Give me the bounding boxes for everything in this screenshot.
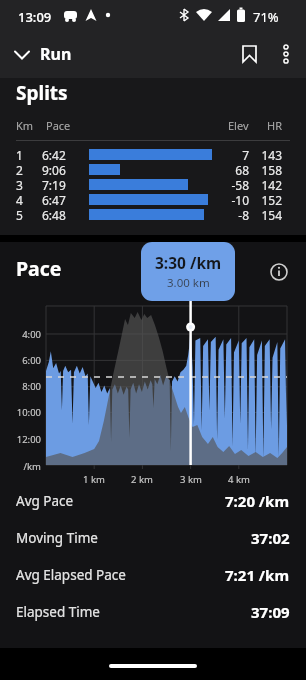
staticText: 158 xyxy=(261,162,282,177)
staticText: Pace xyxy=(16,255,62,282)
staticText: 68 xyxy=(235,162,249,177)
staticText: 8:00 xyxy=(22,380,41,393)
staticText: 2 xyxy=(16,162,23,177)
staticText: 7:21 /km xyxy=(225,565,290,585)
staticText: Elapsed Time xyxy=(16,603,100,621)
staticText: 4 km xyxy=(228,473,250,486)
staticText: Avg Pace xyxy=(16,492,74,510)
staticText: 142 xyxy=(261,177,282,192)
staticText: 2 km xyxy=(131,473,153,486)
staticText: 37:02 xyxy=(251,528,290,548)
staticText: 3.00 km xyxy=(167,275,210,291)
staticText: 7 xyxy=(242,147,249,162)
staticText: 6:00 xyxy=(22,354,41,367)
button[interactable] xyxy=(236,33,264,75)
staticText: 4 xyxy=(16,192,23,207)
staticText: 1 km xyxy=(83,473,105,486)
staticText: 71% xyxy=(253,8,279,26)
staticText: Moving Time xyxy=(16,529,98,547)
staticText: 3 xyxy=(16,177,23,192)
staticText: 10:00 xyxy=(16,406,41,419)
staticText: Km xyxy=(16,118,34,133)
staticText: 6:47 xyxy=(42,192,66,207)
staticText: 7:19 xyxy=(42,177,66,192)
staticText: -58 xyxy=(231,177,249,192)
button[interactable] xyxy=(272,33,300,75)
staticText: /km xyxy=(23,460,41,473)
staticText: 152 xyxy=(261,192,282,207)
staticText: 12:00 xyxy=(16,433,41,446)
staticText: 1 xyxy=(16,147,23,162)
staticText: HR xyxy=(267,118,282,133)
staticText: Splits xyxy=(16,80,68,106)
staticText: -10 xyxy=(231,192,249,207)
staticText: 6:48 xyxy=(42,207,66,222)
staticText: 143 xyxy=(261,147,282,162)
staticText: Pace xyxy=(46,118,71,133)
staticText: 9:06 xyxy=(42,162,66,177)
staticText: 4:00 xyxy=(22,328,41,341)
staticText: 3:30 /km xyxy=(155,252,222,273)
button[interactable] xyxy=(266,259,292,285)
staticText: 154 xyxy=(261,207,282,222)
staticText: 13:09 xyxy=(18,8,52,26)
staticText: Avg Elapsed Pace xyxy=(16,566,126,584)
staticText: -8 xyxy=(238,207,249,222)
staticText: 37:09 xyxy=(251,602,290,622)
staticText: 3 km xyxy=(180,473,202,486)
button[interactable]: 3:30 /km xyxy=(141,242,235,301)
staticText: 6:42 xyxy=(42,147,66,162)
button[interactable]: Run xyxy=(8,30,72,78)
staticText: Elev xyxy=(228,118,249,133)
staticText: 7:20 /km xyxy=(225,491,290,511)
staticText: Run xyxy=(40,43,72,65)
staticText: 5 xyxy=(16,207,23,222)
